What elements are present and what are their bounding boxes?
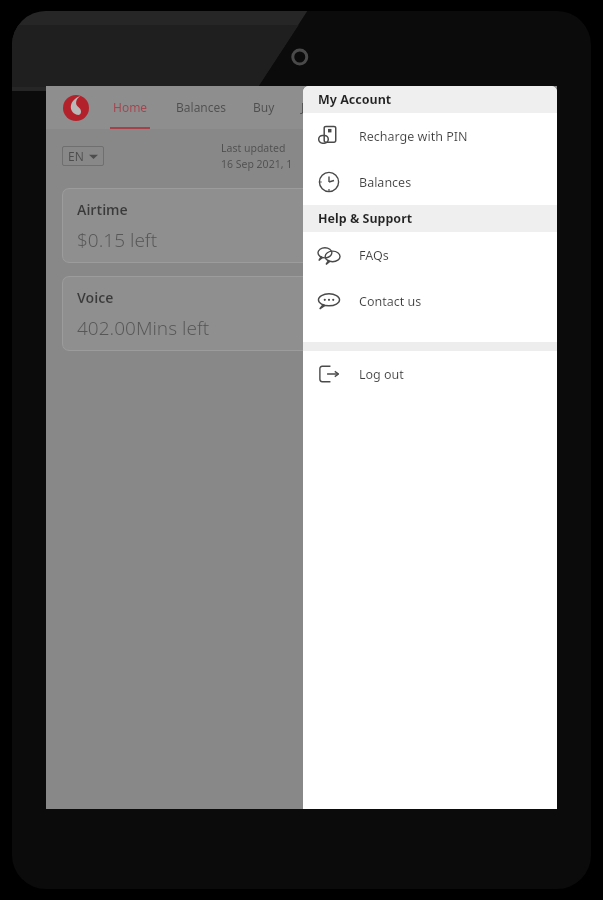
- button[interactable]: Log out: [303, 351, 557, 397]
- staticText: Last updated: [221, 141, 341, 155]
- staticText: FAQs: [359, 247, 389, 264]
- staticText: Home: [113, 99, 148, 115]
- staticText: Airtime: [77, 200, 128, 219]
- button[interactable]: Just 4 You: [299, 86, 358, 129]
- staticText: My Account: [318, 91, 392, 108]
- button[interactable]: Balances: [303, 159, 557, 205]
- staticText: EN: [68, 148, 84, 164]
- button[interactable]: Contact us: [303, 278, 557, 324]
- staticText: Buy: [253, 99, 275, 115]
- staticText: Log out: [359, 366, 404, 383]
- staticText: $0.15 left: [77, 227, 158, 253]
- button[interactable]: EN: [62, 146, 104, 166]
- staticText: Balances: [359, 174, 412, 191]
- button[interactable]: Vodafone home: [62, 94, 90, 122]
- button[interactable]: Menu: [517, 94, 545, 122]
- button[interactable]: Balances: [174, 86, 229, 129]
- button[interactable]: Voice: [62, 276, 541, 351]
- staticText: Balances: [176, 99, 227, 115]
- staticText: Contact us: [359, 293, 422, 310]
- staticText: Recharge with PIN: [359, 128, 468, 145]
- staticText: Just 4 You: [301, 99, 356, 115]
- staticText: Voice: [77, 288, 114, 307]
- staticText: Help & Support: [318, 210, 413, 227]
- button[interactable]: FAQs: [303, 232, 557, 278]
- button[interactable]: Airtime: [62, 188, 541, 263]
- button[interactable]: Buy: [251, 86, 277, 129]
- button[interactable]: Home: [108, 86, 152, 129]
- button[interactable]: 081 670 2289: [429, 100, 501, 116]
- button[interactable]: Recharge with PIN: [303, 113, 557, 159]
- staticText: 16 Sep 2021, 1: [221, 157, 341, 171]
- staticText: 402.00Mins left: [77, 315, 210, 341]
